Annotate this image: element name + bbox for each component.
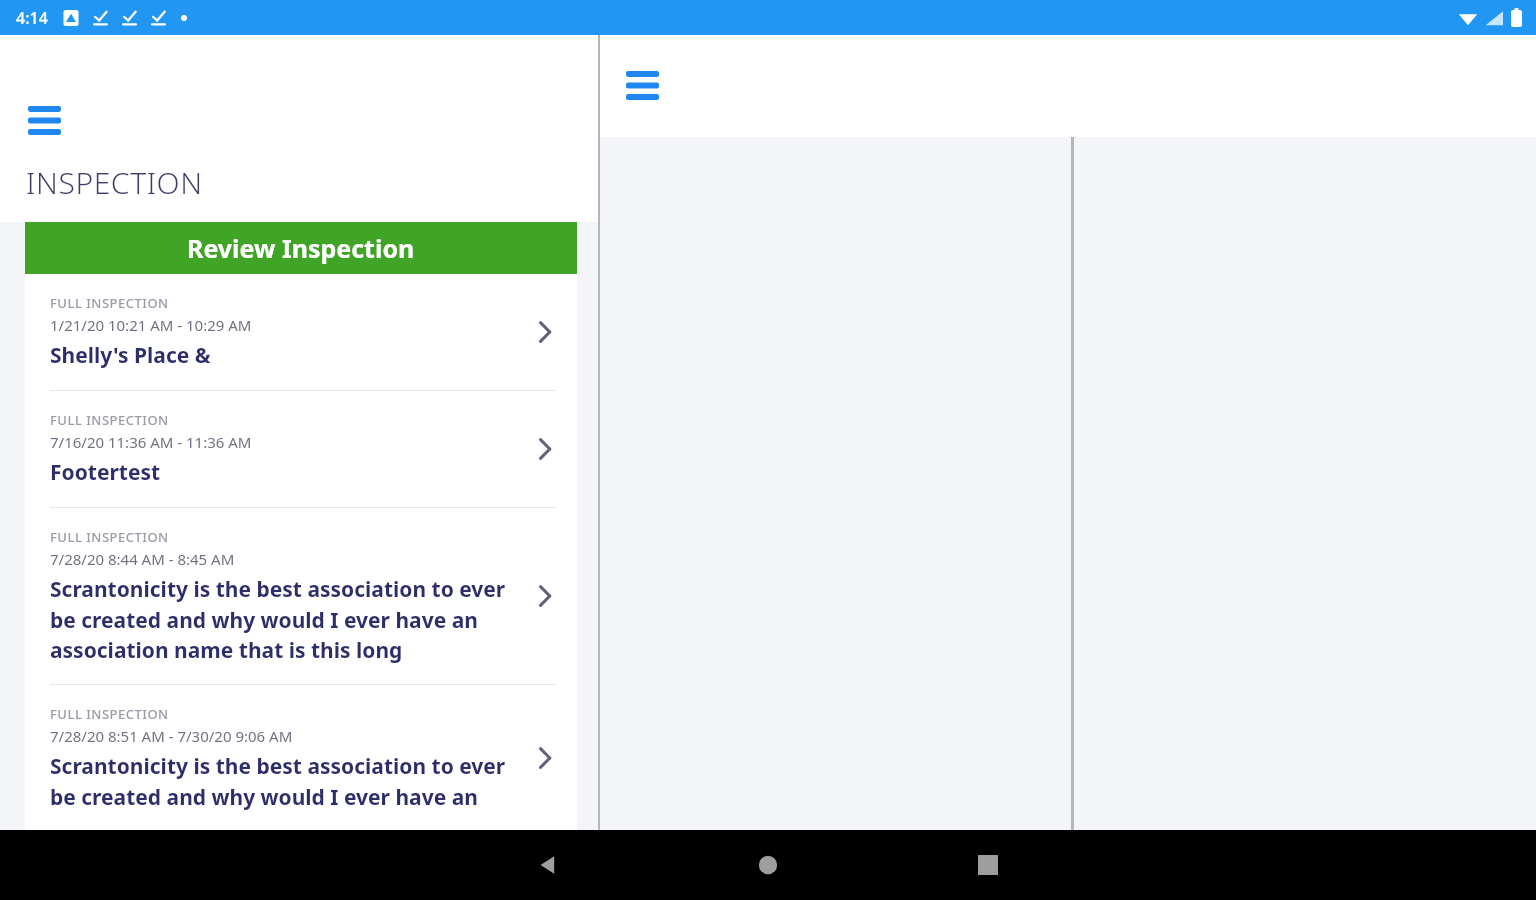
staticText: FULL INSPECTION	[50, 411, 169, 429]
staticText: FULL INSPECTION	[50, 528, 169, 546]
staticText: FULL INSPECTION	[50, 294, 169, 312]
staticText: Scrantonicity is the best association to…	[50, 752, 517, 810]
button[interactable]: FULL INSPECTION	[25, 274, 577, 390]
button[interactable]: FULL INSPECTION	[25, 391, 577, 507]
staticText: 7/16/20 11:36 AM - 11:36 AM	[50, 432, 252, 452]
button[interactable]: Back	[520, 837, 576, 893]
button[interactable]: FULL INSPECTION	[25, 508, 577, 684]
staticText: Footertest	[50, 458, 161, 487]
button[interactable]: Review Inspection	[25, 222, 577, 274]
staticText: Shelly's Place &	[50, 341, 211, 370]
staticText: FULL INSPECTION	[50, 705, 169, 723]
staticText: 7/28/20 8:51 AM - 7/30/20 9:06 AM	[50, 726, 293, 746]
staticText: 1/21/20 10:21 AM - 10:29 AM	[50, 315, 252, 335]
staticText: Review Inspection	[187, 231, 415, 265]
button[interactable]: Open navigation menu	[620, 64, 664, 106]
button[interactable]: FULL INSPECTION	[25, 685, 577, 830]
button[interactable]: Home	[740, 837, 796, 893]
staticText: Scrantonicity is the best association to…	[50, 575, 517, 664]
button[interactable]: Open navigation menu	[22, 99, 66, 141]
staticText: 7/28/20 8:44 AM - 8:45 AM	[50, 549, 235, 569]
button[interactable]: Recent apps	[960, 837, 1016, 893]
staticText: 4:14	[16, 7, 48, 29]
staticText: INSPECTION	[26, 162, 203, 203]
